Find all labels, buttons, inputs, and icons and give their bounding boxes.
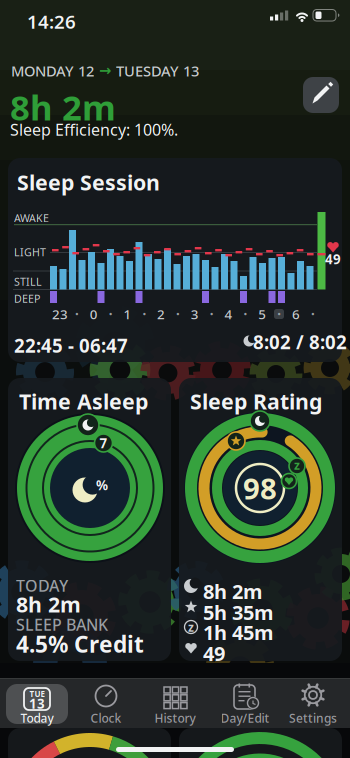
- staticText: 49: [325, 250, 341, 268]
- staticText: 0: [90, 305, 98, 323]
- staticText: STILL: [14, 274, 42, 289]
- staticText: AWAKE: [14, 211, 49, 225]
- staticText: 8h 2m: [10, 84, 116, 130]
- staticText: ·: [176, 305, 180, 323]
- staticText: %: [96, 476, 108, 494]
- staticText: TUESDAY 13: [116, 61, 199, 80]
- staticText: 3: [191, 305, 199, 323]
- staticText: MONDAY 12: [11, 61, 94, 80]
- staticText: 8h 2m: [16, 590, 81, 618]
- staticText: 4: [224, 305, 232, 323]
- staticText: 4.5% Credit: [16, 629, 144, 659]
- staticText: 13: [29, 695, 45, 712]
- staticText: Today: [20, 710, 53, 726]
- staticText: ·: [109, 305, 113, 323]
- staticText: ·: [243, 305, 247, 323]
- staticText: ·: [210, 305, 214, 323]
- staticText: 14:26: [27, 9, 76, 34]
- staticText: Sleep Efficiency: 100%.: [10, 119, 178, 140]
- staticText: SLEEP BANK: [16, 614, 108, 635]
- staticText: ·: [142, 305, 146, 323]
- staticText: 23: [52, 305, 68, 323]
- staticText: 2: [157, 305, 165, 323]
- staticText: LIGHT: [14, 245, 46, 259]
- staticText: TUE: [29, 689, 44, 699]
- staticText: 5: [258, 305, 266, 323]
- staticText: 8h 2m: [203, 578, 263, 605]
- staticText: →: [99, 62, 111, 79]
- staticText: 1h 45m: [203, 619, 274, 646]
- staticText: 98: [243, 468, 277, 507]
- staticText: 49: [203, 640, 225, 667]
- staticText: 8:02 / 8:02: [253, 330, 347, 354]
- staticText: Sleep Session: [17, 168, 160, 196]
- staticText: z: [294, 457, 300, 473]
- staticText: 1: [123, 305, 131, 323]
- staticText: 7: [99, 434, 107, 452]
- staticText: DEEP: [14, 291, 40, 306]
- staticText: z: [188, 619, 194, 635]
- staticText: 6: [292, 305, 300, 323]
- staticText: Settings: [289, 710, 337, 726]
- staticText: ·: [75, 305, 79, 323]
- staticText: ·: [311, 305, 315, 323]
- staticText: Time Asleep: [19, 387, 148, 415]
- staticText: 5h 35m: [203, 599, 274, 626]
- staticText: History: [154, 710, 195, 726]
- staticText: Sleep Rating: [190, 387, 322, 415]
- staticText: ·: [277, 305, 281, 323]
- staticText: Day/Edit: [220, 710, 269, 726]
- staticText: 22:45 - 06:47: [14, 333, 128, 358]
- staticText: TODAY: [16, 575, 68, 596]
- staticText: Clock: [90, 710, 121, 726]
